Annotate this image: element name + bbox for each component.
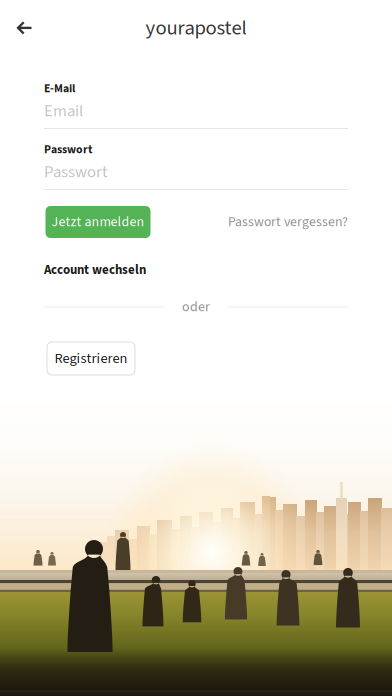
staticText: Jetzt anmelden: [51, 212, 144, 232]
staticText: yourapostel: [145, 13, 246, 43]
staticText: E-Mail: [44, 80, 75, 97]
button[interactable]: Jetzt anmelden: [45, 206, 150, 238]
staticText: Email: [44, 99, 83, 123]
button[interactable]: Account wechseln: [44, 265, 146, 275]
staticText: Passwort: [44, 141, 92, 158]
staticText: Registrieren: [54, 348, 127, 369]
button[interactable]: Passwort vergessen?: [228, 212, 348, 232]
staticText: Passwort vergessen?: [228, 212, 348, 232]
staticText: Account wechseln: [44, 261, 146, 279]
button[interactable]: Back: [0, 6, 48, 50]
staticText: Passwort: [44, 160, 108, 184]
button[interactable]: Registrieren: [47, 342, 135, 375]
staticText: oder: [182, 297, 210, 317]
